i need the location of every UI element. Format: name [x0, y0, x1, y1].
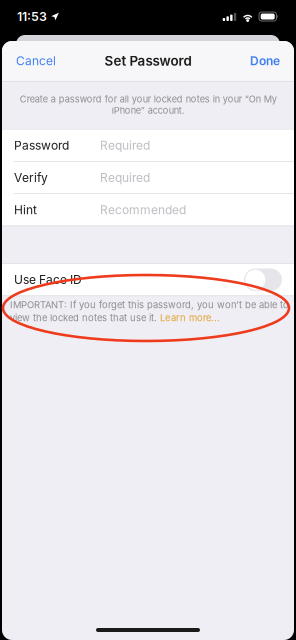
staticText: Recommended: [100, 203, 186, 217]
staticText: view the locked notes that use it.: [10, 312, 160, 323]
staticText: Set Password: [104, 53, 191, 69]
button[interactable]: Password: [2, 130, 294, 161]
staticText: Required: [100, 170, 150, 185]
staticText: 11:53: [17, 9, 47, 24]
button[interactable]: Done: [236, 41, 294, 81]
staticText: Done: [250, 54, 280, 68]
staticText: Password: [14, 138, 69, 153]
staticText: IMPORTANT: If you forget this password, …: [10, 299, 289, 311]
button[interactable]: Learn more...: [160, 312, 220, 323]
staticText: Create a password for all your locked no…: [19, 94, 276, 116]
staticText: Hint: [14, 203, 37, 217]
staticText: Learn more...: [160, 312, 220, 323]
button[interactable]: Hint: [2, 194, 294, 226]
staticText: Cancel: [16, 54, 56, 68]
staticText: Required: [100, 138, 150, 153]
staticText: Verify: [14, 170, 48, 185]
button[interactable]: Verify: [2, 162, 294, 193]
button[interactable]: Cancel: [2, 41, 70, 81]
button[interactable]: Use Face ID: [2, 264, 294, 295]
staticText: Use Face ID: [14, 272, 82, 287]
